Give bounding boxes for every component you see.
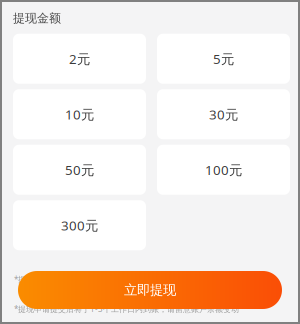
- button[interactable]: 30元: [157, 89, 290, 139]
- button[interactable]: 10元: [13, 89, 146, 139]
- staticText: 300元: [61, 216, 98, 234]
- staticText: 5元: [213, 50, 234, 68]
- staticText: 立即提现: [124, 282, 176, 298]
- button[interactable]: 2元: [13, 34, 146, 84]
- staticText: *提现申请提交后将于1-3个工作日内到账，请留意账户余额变动: [14, 304, 239, 314]
- staticText: *提现金额为税前金额，实际到账金额以扣税后为准: [14, 274, 194, 285]
- staticText: 2元: [69, 50, 90, 68]
- staticText: 10元: [65, 105, 94, 123]
- button[interactable]: 5元: [157, 34, 290, 84]
- button[interactable]: 立即提现: [18, 271, 282, 309]
- staticText: 30元: [209, 105, 238, 123]
- staticText: 100元: [205, 161, 242, 179]
- staticText: 50元: [65, 161, 94, 179]
- button[interactable]: 300元: [13, 200, 146, 250]
- button[interactable]: 100元: [157, 145, 290, 195]
- staticText: 提现金额: [13, 11, 61, 26]
- button[interactable]: 50元: [13, 145, 146, 195]
